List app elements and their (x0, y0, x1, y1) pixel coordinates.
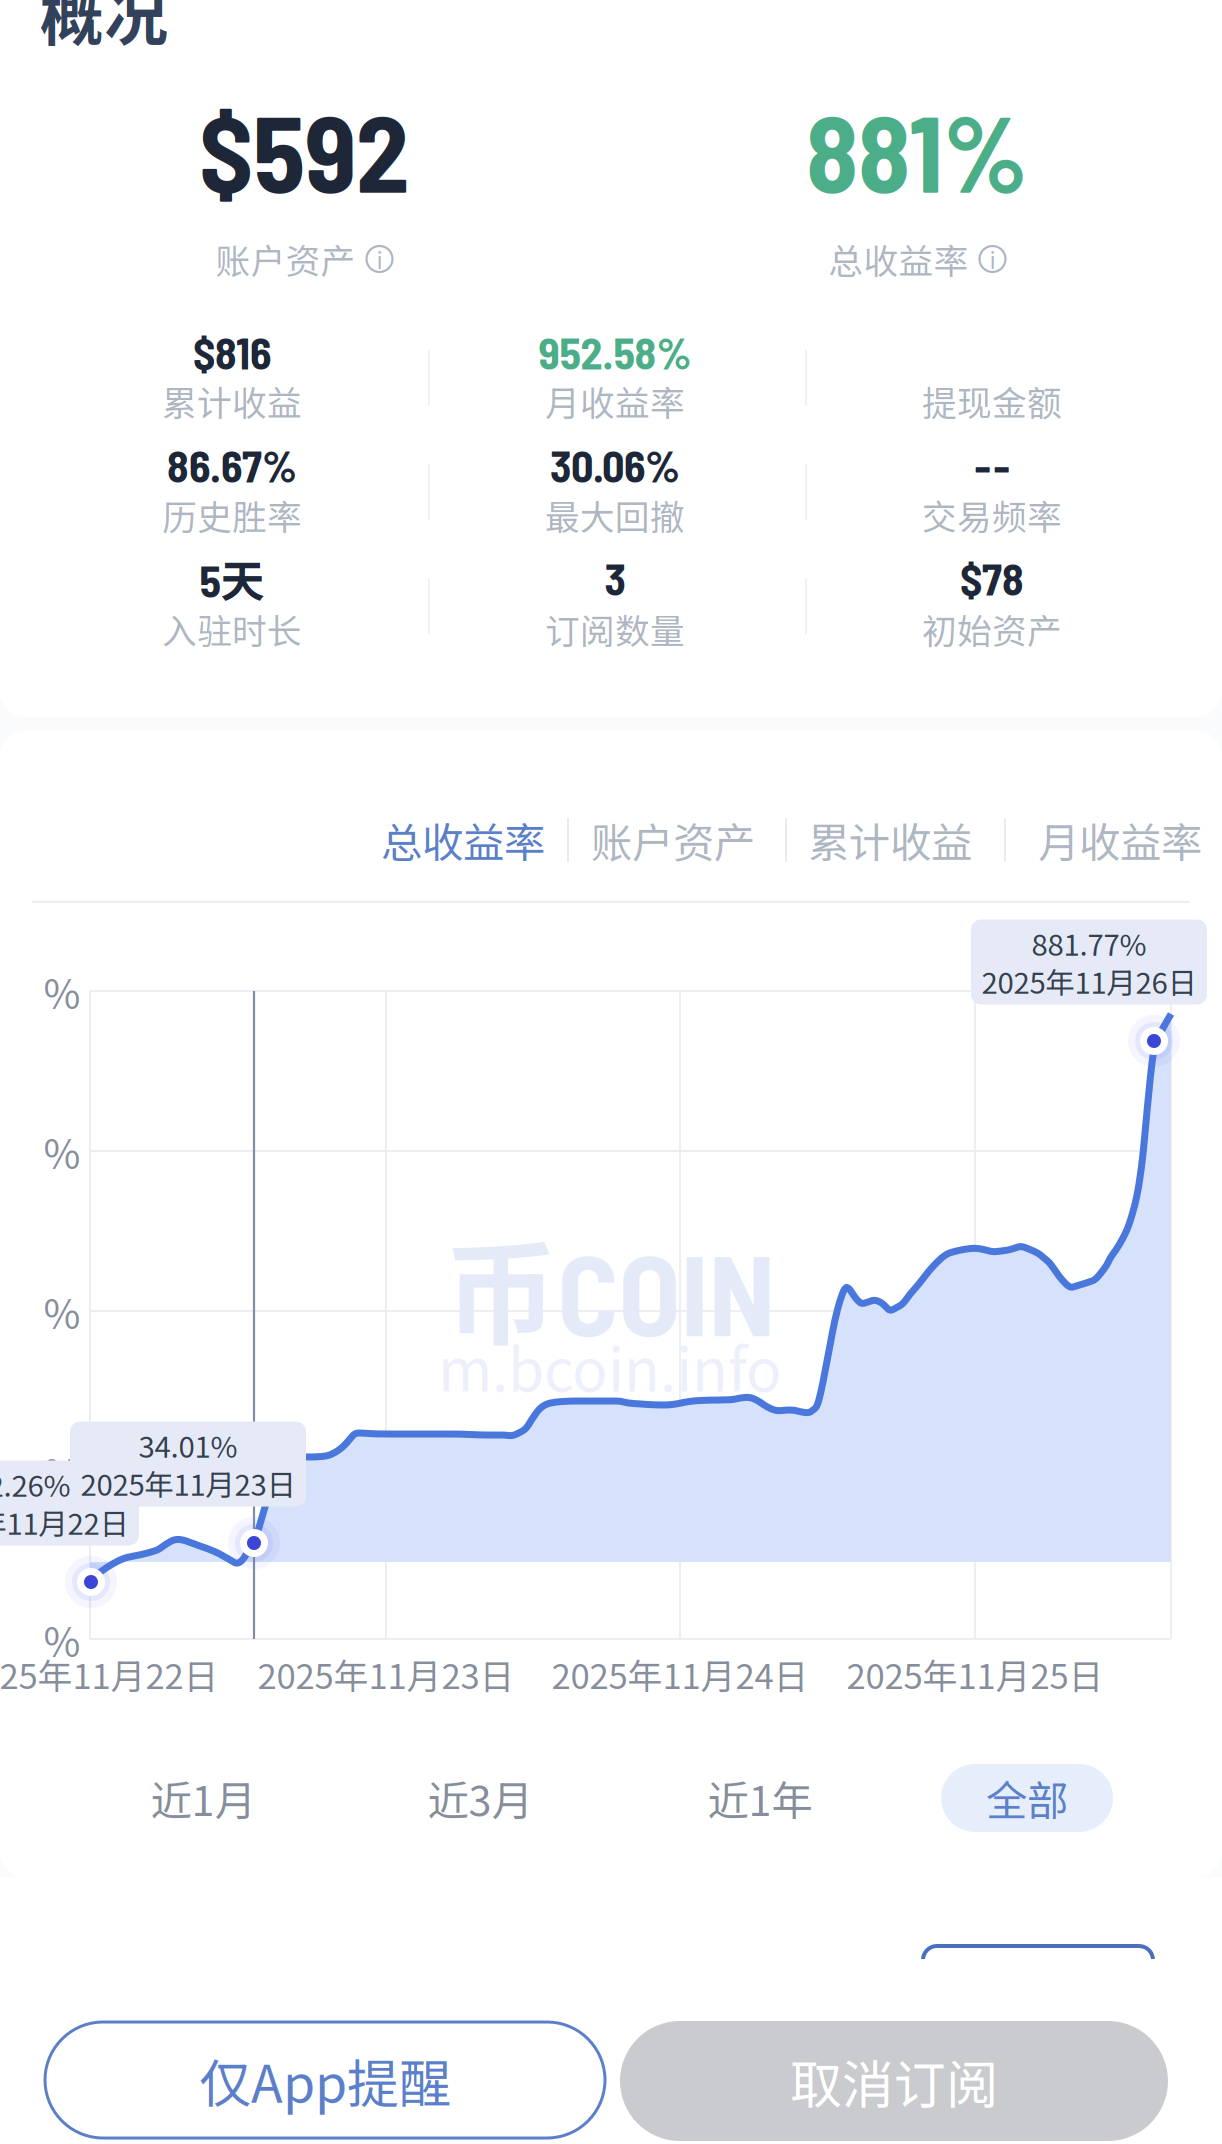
staticText: 累计收益 (162, 376, 302, 426)
button[interactable]: 取消订阅 (620, 2021, 1168, 2141)
button[interactable]: 概况 (40, 0, 168, 58)
staticText: 历史胜率 (162, 490, 302, 540)
staticText: 累计收益 (808, 810, 972, 870)
staticText: 952.58% (538, 326, 691, 378)
staticText: 近1月 (150, 1768, 255, 1828)
staticText: 月收益率 (545, 376, 685, 426)
button[interactable]: 近1月 (128, 1768, 278, 1828)
button[interactable]: 近3月 (405, 1768, 555, 1828)
staticText: 账户资产 (215, 234, 355, 284)
button[interactable]: 881% (806, 86, 1028, 214)
staticText: 881.77% (1031, 922, 1146, 964)
staticText: 86.67% (167, 439, 297, 491)
staticText: 账户资产 (591, 810, 755, 870)
staticText: 仅App提醒 (199, 2042, 451, 2118)
button[interactable]: 全部 (941, 1764, 1113, 1832)
staticText: m.bcoin.info (438, 1323, 782, 1408)
staticText: 初始资产 (922, 604, 1062, 654)
staticText: 2025年11月26日 (981, 960, 1196, 1002)
staticText: 币COIN (444, 1204, 775, 1368)
staticText: 3 (604, 552, 625, 604)
button[interactable]: 近1年 (685, 1768, 835, 1828)
staticText: $78 (960, 552, 1024, 604)
staticText: 入驻时长 (162, 604, 302, 654)
staticText: $592 (199, 86, 409, 214)
button[interactable]: $592 (199, 86, 409, 214)
staticText: 881% (806, 86, 1028, 214)
staticText: % (43, 962, 80, 1020)
staticText: 概况 (40, 0, 168, 58)
staticText: 2025年11月23日 (257, 1649, 514, 1699)
staticText: 5天 (199, 546, 264, 610)
staticText: 订阅数量 (545, 604, 685, 654)
button[interactable]: 总收益率 (370, 805, 556, 875)
staticText: 月收益率 (1038, 810, 1202, 870)
staticText: % (43, 1282, 80, 1340)
staticText: $816 (193, 326, 271, 378)
staticText: 总收益率 (381, 810, 545, 870)
staticText: 2025年11月25日 (846, 1649, 1103, 1699)
staticText: 总收益率 (828, 234, 968, 284)
staticText: 34.01% (138, 1424, 237, 1466)
staticText: 2025年11月24日 (551, 1649, 808, 1699)
staticText: 近3月 (427, 1768, 532, 1828)
button[interactable]: 累计收益 (797, 805, 983, 875)
button[interactable]: 仅App提醒 (45, 2022, 605, 2138)
staticText: i (989, 243, 995, 275)
staticText: 全部 (986, 1768, 1068, 1828)
staticText: % (43, 1442, 80, 1500)
staticText: % (43, 1610, 80, 1668)
staticText: - - (974, 439, 1009, 491)
staticText: 2025年11月23日 (80, 1462, 295, 1504)
staticText: 2025年11月22日 (0, 1649, 218, 1699)
button[interactable]: 月收益率 (1027, 805, 1213, 875)
staticText: 近1年 (707, 1768, 812, 1828)
staticText: 最大回撤 (545, 490, 685, 540)
staticText: 提现金额 (922, 376, 1062, 426)
staticText: % (43, 1122, 80, 1180)
staticText: 12.26% (0, 1463, 70, 1505)
staticText: 取消订阅 (790, 2043, 998, 2119)
staticText: 30.06% (550, 439, 680, 491)
staticText: i (376, 243, 382, 275)
staticText: 交易频率 (922, 490, 1062, 540)
staticText: 2025年11月22日 (0, 1501, 128, 1543)
button[interactable]: 账户资产 (580, 805, 766, 875)
